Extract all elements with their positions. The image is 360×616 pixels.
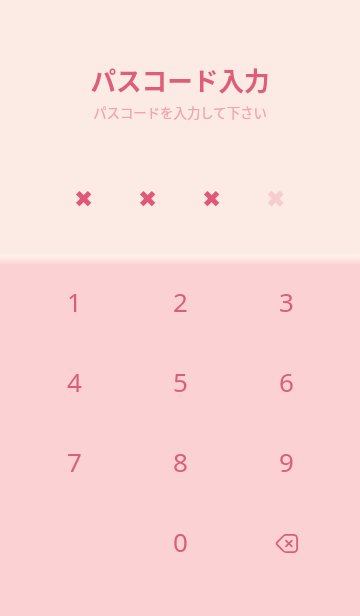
staticText: 7 bbox=[67, 444, 82, 479]
staticText: 4 bbox=[67, 364, 82, 399]
button[interactable]: 8 bbox=[127, 421, 233, 501]
button[interactable]: 0 bbox=[127, 501, 233, 581]
staticText: 8 bbox=[173, 444, 188, 479]
staticText: ✖ bbox=[74, 186, 94, 209]
staticText: ✖ bbox=[138, 186, 158, 209]
staticText: パスコードを入力して下さい bbox=[0, 102, 360, 121]
button[interactable]: 6 bbox=[233, 341, 339, 421]
staticText: 1 bbox=[67, 284, 82, 319]
staticText: ✖ bbox=[202, 186, 222, 209]
staticText: パスコード入力 bbox=[0, 61, 360, 98]
button[interactable]: Delete bbox=[233, 501, 339, 581]
button[interactable]: 9 bbox=[233, 421, 339, 501]
staticText: ✖ bbox=[266, 186, 286, 209]
staticText: 9 bbox=[279, 444, 294, 479]
staticText: 6 bbox=[279, 364, 294, 399]
staticText: 2 bbox=[173, 284, 188, 319]
button[interactable]: 5 bbox=[127, 341, 233, 421]
staticText: 0 bbox=[173, 524, 188, 559]
staticText: 5 bbox=[173, 364, 188, 399]
button[interactable]: 4 bbox=[21, 341, 127, 421]
button[interactable]: 2 bbox=[127, 261, 233, 341]
button[interactable]: 7 bbox=[21, 421, 127, 501]
button[interactable]: 3 bbox=[233, 261, 339, 341]
button[interactable]: 1 bbox=[21, 261, 127, 341]
staticText: 3 bbox=[279, 284, 294, 319]
